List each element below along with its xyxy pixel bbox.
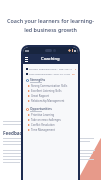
button[interactable]: Menu (23, 54, 78, 64)
staticText: Current Coaching Cycle : 2021-05-17 to (29, 67, 75, 70)
button[interactable]: Menu (25, 57, 28, 62)
staticText: Excellent Listening Skills (31, 89, 62, 93)
staticText: Strong Communication Skills (31, 84, 68, 88)
staticText: Time Management (31, 128, 55, 132)
staticText: Last Coaching Date : 2021-07-12 by (29, 72, 71, 75)
button[interactable]: Time Management (28, 128, 75, 132)
button[interactable]: Conflict Resolution (28, 123, 75, 127)
staticText: led business growth (24, 26, 77, 33)
staticText: Prioritise Learning (31, 113, 55, 117)
button[interactable]: Prioritise Learning (28, 113, 75, 117)
button[interactable]: Take on new challenges (28, 118, 75, 122)
staticText: Feedback (3, 130, 25, 136)
staticText: Great Rapport (31, 94, 49, 98)
staticText: Take on new challenges (31, 118, 61, 122)
button[interactable]: sesison name (72, 72, 75, 75)
button[interactable]: Relationship Management (28, 99, 75, 103)
staticText: Strengths (30, 78, 46, 82)
button[interactable]: Excellent Listening Skills (28, 89, 75, 93)
staticText: Conflict Resolution (31, 123, 55, 127)
button[interactable]: Strong Communication Skills (28, 84, 75, 88)
staticText: Opportunities (30, 107, 52, 111)
staticText: Relationship Management (31, 99, 65, 103)
staticText: Coach your learners for learning- (7, 17, 94, 24)
staticText: Coaching (41, 56, 60, 62)
button[interactable]: Great Rapport (28, 94, 75, 98)
